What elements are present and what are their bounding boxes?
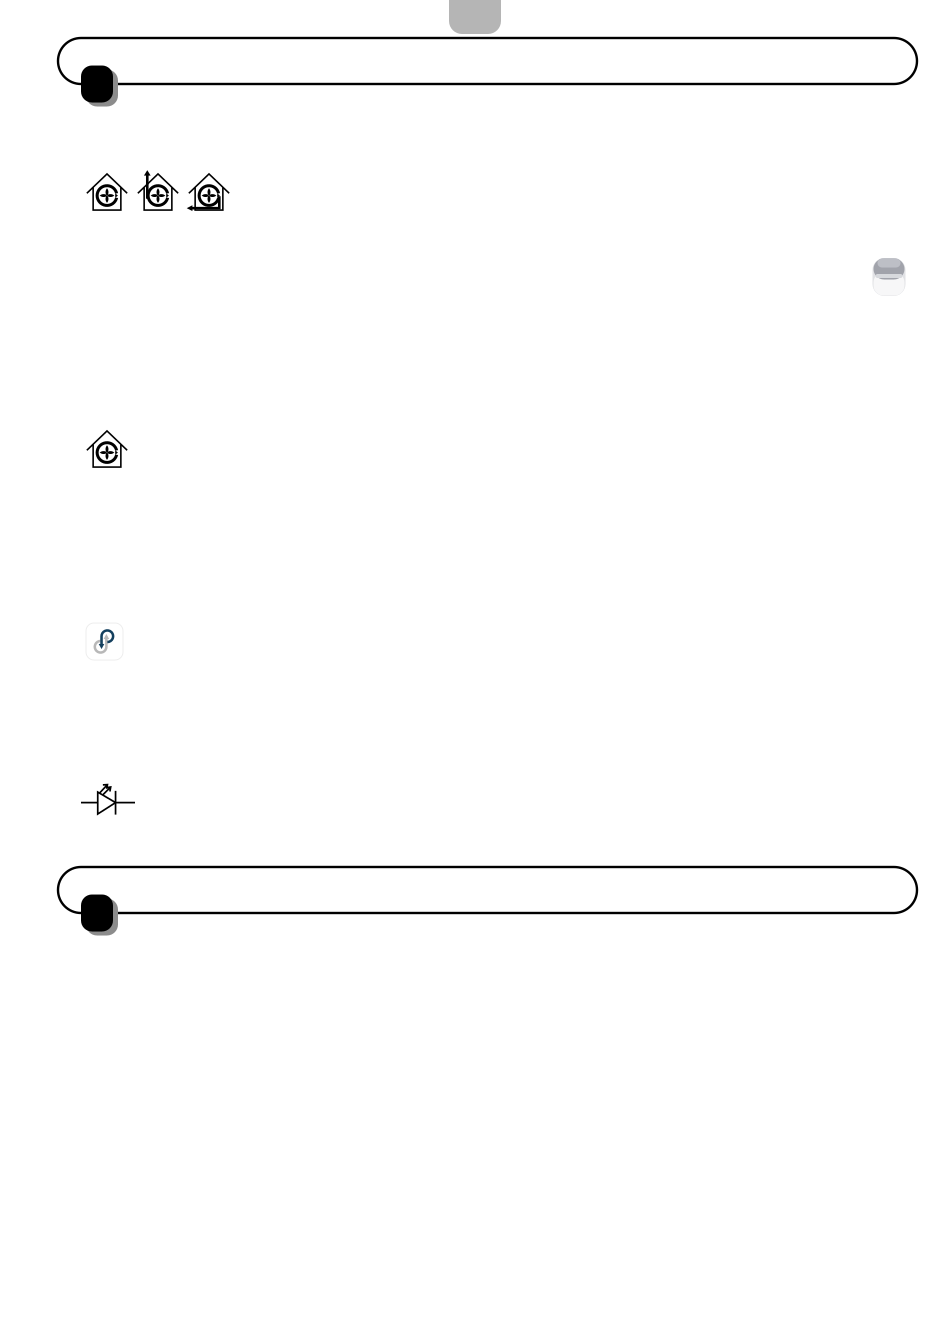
button[interactable]: Home ventilation	[86, 428, 128, 470]
button[interactable]: Level	[58, 38, 917, 84]
button[interactable]: Exhaust mode	[137, 171, 179, 213]
button[interactable]: Auto swap	[86, 623, 123, 660]
button[interactable]: Recirculate mode	[188, 171, 230, 213]
button[interactable]: Level	[58, 867, 917, 913]
button[interactable]: Auto mode	[86, 171, 128, 213]
